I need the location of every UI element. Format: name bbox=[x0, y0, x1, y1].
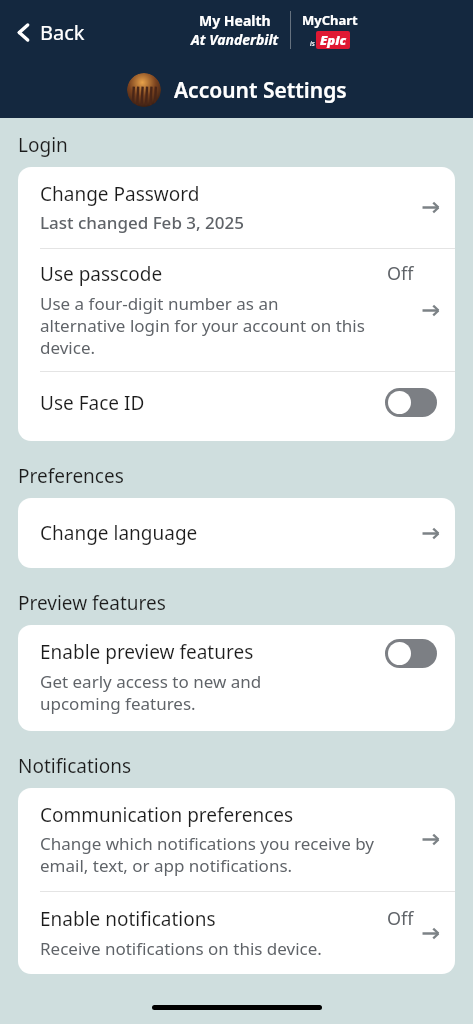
staticText: is bbox=[310, 39, 315, 49]
staticText: Preferences bbox=[18, 463, 124, 489]
button[interactable]: Communication preferences bbox=[18, 788, 455, 891]
staticText: Notifications bbox=[18, 753, 132, 779]
staticText: Get early access to new and upcoming fea… bbox=[40, 670, 262, 715]
staticText: MyChart bbox=[302, 11, 358, 29]
staticText: Preview features bbox=[18, 590, 166, 616]
staticText: Use a four-digit number as an alternativ… bbox=[40, 292, 365, 359]
staticText: Off bbox=[387, 906, 414, 931]
staticText: Use passcode bbox=[40, 261, 387, 287]
staticText: Off bbox=[387, 261, 414, 286]
button[interactable]: Enable preview features bbox=[18, 625, 455, 731]
button[interactable]: Enable preview features bbox=[385, 639, 437, 668]
button[interactable]: Use passcode bbox=[18, 249, 455, 371]
staticText: Communication preferences bbox=[40, 802, 294, 828]
button[interactable]: Use Face ID bbox=[18, 372, 455, 441]
staticText: Change language bbox=[40, 520, 420, 546]
staticText: Enable notifications bbox=[40, 906, 387, 932]
button[interactable]: Enable notifications bbox=[18, 892, 455, 974]
button[interactable]: Change Password bbox=[18, 167, 455, 248]
staticText: My Health bbox=[199, 11, 271, 30]
button[interactable]: Use Face ID bbox=[385, 388, 437, 417]
staticText: Back bbox=[40, 19, 85, 46]
staticText: Receive notifications on this device. bbox=[40, 937, 322, 960]
staticText: Epic bbox=[320, 31, 346, 49]
staticText: Account Settings bbox=[174, 76, 347, 105]
button[interactable]: Back bbox=[8, 14, 93, 51]
staticText: Enable preview features bbox=[40, 639, 254, 665]
button[interactable]: Account Settings bbox=[127, 73, 347, 107]
staticText: Use Face ID bbox=[40, 390, 385, 416]
staticText: Login bbox=[18, 132, 68, 158]
staticText: Change which notifications you receive b… bbox=[40, 832, 374, 877]
button[interactable]: Change language bbox=[18, 498, 455, 568]
staticText: Change Password bbox=[40, 181, 200, 207]
staticText: At Vanderbilt bbox=[191, 30, 279, 49]
staticText: Last changed Feb 3, 2025 bbox=[40, 211, 245, 234]
